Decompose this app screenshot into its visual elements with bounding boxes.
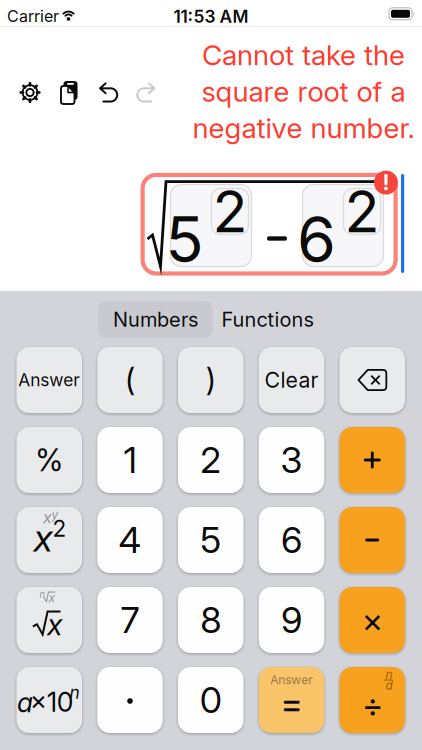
- staticText: ×: [362, 600, 383, 640]
- staticText: 2: [344, 178, 379, 245]
- button[interactable]: 6: [259, 507, 324, 573]
- button[interactable]: multiply: [339, 587, 405, 653]
- staticText: 5: [200, 519, 221, 561]
- staticText: Carrier: [7, 7, 59, 26]
- staticText: ): [206, 362, 216, 398]
- button[interactable]: 9: [259, 587, 324, 653]
- staticText: 3: [280, 439, 302, 481]
- button[interactable]: minus: [339, 507, 405, 573]
- staticText: 1: [123, 439, 136, 481]
- staticText: n: [69, 682, 79, 703]
- button[interactable]: Numbers: [98, 301, 213, 338]
- button[interactable]: Clear: [259, 347, 324, 413]
- button[interactable]: Undo: [97, 82, 118, 102]
- button[interactable]: plus: [339, 427, 405, 493]
- staticText: 9: [281, 599, 302, 641]
- staticText: ×10: [30, 686, 74, 718]
- button[interactable]: 5: [178, 507, 243, 573]
- staticText: 6: [281, 519, 302, 561]
- button[interactable]: 4: [97, 507, 163, 573]
- staticText: ÷: [362, 685, 383, 725]
- button[interactable]: 2: [178, 427, 243, 493]
- staticText: 2: [212, 178, 247, 245]
- button[interactable]: 8: [178, 587, 243, 653]
- staticText: negative number.: [192, 112, 414, 145]
- staticText: d: [385, 678, 392, 693]
- button[interactable]: 3: [259, 427, 324, 493]
- staticText: 8: [200, 599, 221, 641]
- staticText: !: [382, 170, 389, 195]
- staticText: Answer: [18, 370, 80, 390]
- button[interactable]: Redo: [136, 82, 157, 102]
- staticText: x: [48, 591, 55, 605]
- button[interactable]: equals: [259, 667, 324, 733]
- staticText: n: [385, 667, 392, 682]
- button[interactable]: Delete: [339, 347, 405, 413]
- staticText: (: [125, 362, 135, 398]
- button[interactable]: percent: [16, 427, 82, 493]
- staticText: 2: [52, 515, 66, 542]
- button[interactable]: open parenthesis: [97, 347, 163, 413]
- staticText: n: [39, 589, 45, 600]
- staticText: Numbers: [113, 308, 198, 331]
- button[interactable]: Functions: [212, 301, 322, 338]
- button[interactable]: 7: [97, 587, 163, 653]
- staticText: x: [47, 607, 62, 642]
- button[interactable]: 0: [178, 667, 243, 733]
- button[interactable]: 1: [97, 427, 163, 493]
- staticText: y: [51, 507, 58, 522]
- button[interactable]: a times ten to the n: [16, 667, 82, 733]
- button[interactable]: square: [16, 507, 82, 573]
- button[interactable]: Paste: [58, 81, 78, 104]
- staticText: x: [43, 508, 52, 527]
- button[interactable]: root: [16, 587, 82, 653]
- staticText: %: [35, 442, 63, 478]
- staticText: 0: [200, 679, 222, 721]
- staticText: Clear: [264, 367, 318, 393]
- staticText: 11:53 AM: [173, 6, 248, 27]
- staticText: a: [17, 687, 33, 718]
- staticText: Functions: [221, 308, 313, 331]
- staticText: 7: [120, 599, 139, 641]
- staticText: Cannot take the: [202, 38, 405, 71]
- staticText: 4: [118, 519, 141, 561]
- staticText: Answer: [270, 673, 313, 687]
- button[interactable]: point: [97, 667, 163, 733]
- staticText: 2: [200, 439, 221, 481]
- button[interactable]: close parenthesis: [178, 347, 243, 413]
- button[interactable]: Settings: [20, 82, 40, 102]
- button[interactable]: Answer: [16, 347, 82, 413]
- staticText: square root of a: [201, 75, 405, 108]
- staticText: 6: [297, 202, 336, 276]
- staticText: x: [33, 516, 52, 560]
- staticText: 5: [165, 202, 203, 276]
- button[interactable]: divide: [339, 667, 405, 733]
